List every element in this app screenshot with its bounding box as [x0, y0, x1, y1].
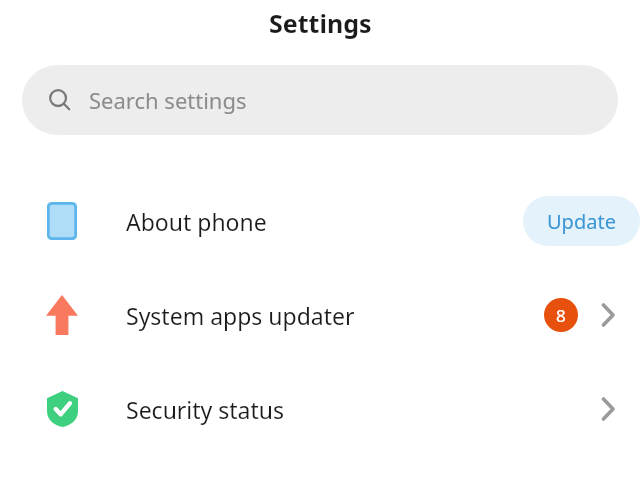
button[interactable]: Open [590, 297, 626, 333]
staticText: 8 [556, 304, 566, 327]
button[interactable]: Security status [0, 362, 640, 456]
button[interactable]: Open [590, 391, 626, 427]
button[interactable]: System apps updater [0, 268, 640, 362]
button[interactable]: Search settings [22, 65, 618, 135]
staticText: Security status [126, 394, 285, 425]
staticText: Search settings [89, 85, 247, 115]
button[interactable]: About phone [0, 174, 640, 268]
staticText: System apps updater [126, 300, 355, 331]
button[interactable]: Update [523, 196, 640, 246]
staticText: Settings [269, 6, 372, 40]
staticText: Update [547, 208, 616, 235]
staticText: About phone [126, 206, 267, 237]
